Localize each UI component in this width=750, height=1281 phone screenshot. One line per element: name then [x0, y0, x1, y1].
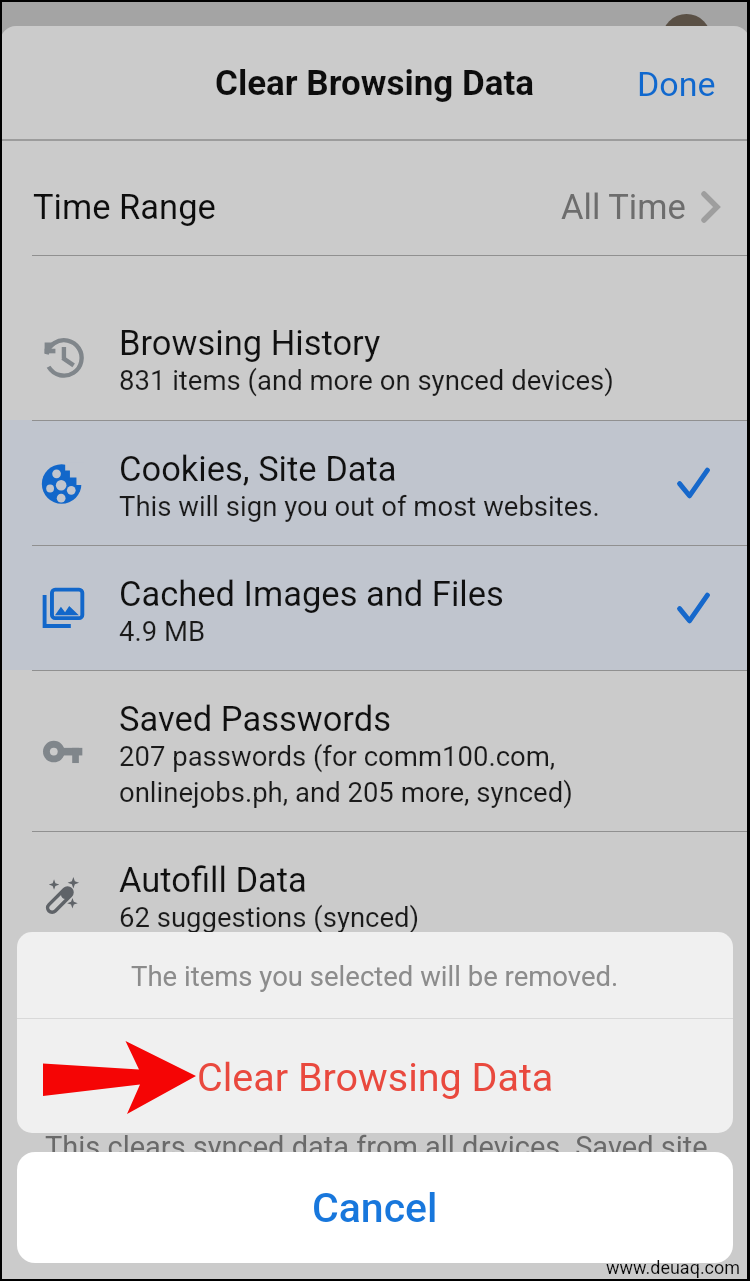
staticText: 62 suggestions (synced) — [119, 901, 420, 933]
staticText: Cookies, Site Data — [119, 449, 397, 489]
staticText: 4.9 MB — [119, 615, 206, 647]
button[interactable]: Time Range — [0, 149, 750, 264]
button[interactable]: Saved Passwords — [0, 670, 750, 831]
staticText: Browsing History — [119, 323, 381, 363]
button[interactable]: Clear Browsing Data — [17, 1019, 733, 1133]
staticText: All Time — [561, 187, 686, 227]
staticText: www.deuaq.com — [606, 1257, 741, 1278]
other: Selected — [677, 592, 709, 624]
staticText: Time Range — [33, 187, 216, 227]
button[interactable]: Cached Images and Files — [0, 545, 750, 670]
staticText: Clear Browsing Data — [215, 63, 535, 104]
staticText: Autofill Data — [119, 860, 307, 900]
staticText: Saved Passwords — [119, 699, 391, 739]
staticText: Done — [637, 64, 716, 104]
staticText: The items you selected will be removed. — [131, 960, 619, 992]
button[interactable]: Autofill Data — [0, 831, 750, 956]
other: Selected — [677, 467, 709, 499]
staticText: This will sign you out of most websites. — [119, 490, 600, 522]
staticText: This clears synced data from all devices… — [45, 1130, 708, 1164]
button[interactable]: Cancel — [17, 1152, 733, 1263]
staticText: Cancel — [312, 1184, 438, 1232]
button[interactable]: Cookies, Site Data — [0, 420, 750, 545]
staticText: Clear Browsing Data — [197, 1054, 554, 1100]
button[interactable]: Browsing History — [0, 294, 750, 420]
button[interactable]: Done — [617, 52, 750, 116]
staticText: 831 items (and more on synced devices) — [119, 364, 614, 396]
staticText: Cached Images and Files — [119, 574, 504, 614]
staticText: 207 passwords (for comm100.com, onlinejo… — [119, 740, 573, 808]
